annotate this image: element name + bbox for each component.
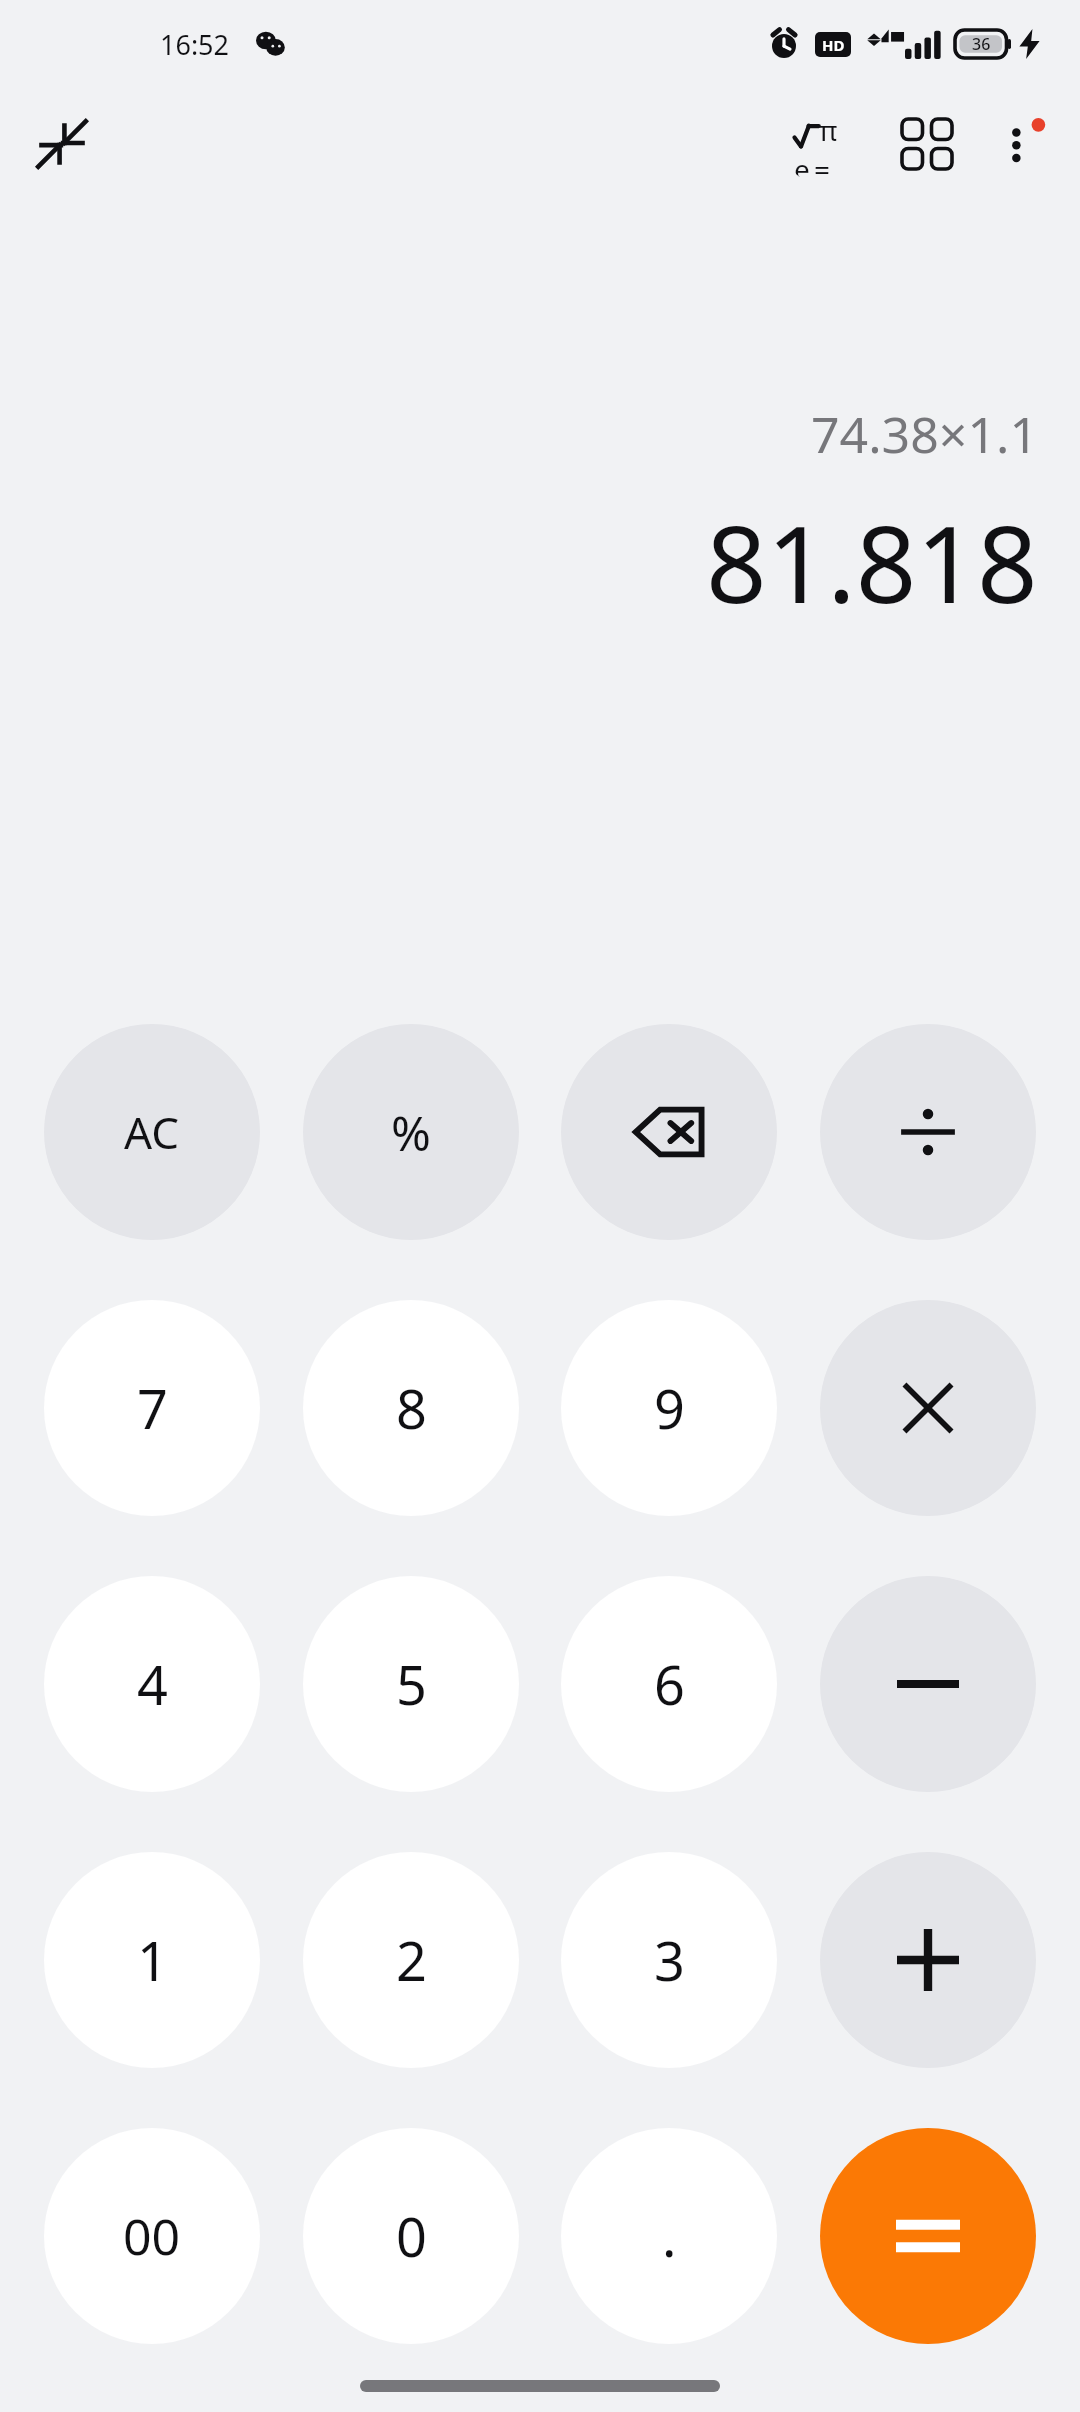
button[interactable]: 0 bbox=[303, 2128, 519, 2344]
button[interactable]: 9 bbox=[561, 1300, 777, 1516]
staticText: HD bbox=[822, 35, 845, 55]
staticText: 9 bbox=[654, 1371, 685, 1445]
staticText: % bbox=[391, 1100, 431, 1165]
staticText: = bbox=[814, 150, 831, 177]
staticText: 4 bbox=[137, 1647, 168, 1721]
button[interactable]: Scientific mode bbox=[784, 101, 870, 187]
staticText: 5 bbox=[396, 1647, 427, 1721]
button[interactable]: 7 bbox=[44, 1300, 260, 1516]
button[interactable]: Divide bbox=[820, 1024, 1036, 1240]
staticText: 7 bbox=[137, 1371, 168, 1445]
button[interactable]: Percent bbox=[303, 1024, 519, 1240]
button[interactable]: 2 bbox=[303, 1852, 519, 2068]
staticText: 16:52 bbox=[160, 26, 230, 63]
staticText: 3 bbox=[654, 1923, 685, 1997]
button[interactable]: 8 bbox=[303, 1300, 519, 1516]
staticText: 0 bbox=[396, 2199, 427, 2273]
button[interactable]: 5 bbox=[303, 1576, 519, 1792]
staticText: 36 bbox=[972, 33, 991, 55]
staticText: e bbox=[794, 150, 810, 177]
button[interactable]: Equals bbox=[820, 2128, 1036, 2344]
staticText: AC bbox=[124, 1102, 180, 1162]
button[interactable]: Multiply bbox=[820, 1300, 1036, 1516]
button[interactable]: Converters bbox=[884, 101, 970, 187]
button[interactable]: 6 bbox=[561, 1576, 777, 1792]
button[interactable]: Backspace bbox=[561, 1024, 777, 1240]
staticText: 81.818 bbox=[706, 490, 1038, 634]
staticText: 00 bbox=[123, 2202, 181, 2270]
staticText: 74.38×1.1 bbox=[811, 400, 1038, 468]
staticText: 8 bbox=[396, 1371, 427, 1445]
staticText: . bbox=[662, 2199, 677, 2273]
button[interactable]: Collapse bbox=[20, 102, 104, 186]
button[interactable]: Minus bbox=[820, 1576, 1036, 1792]
button[interactable]: Plus bbox=[820, 1852, 1036, 2068]
staticText: 2 bbox=[396, 1923, 427, 1997]
button[interactable]: 1 bbox=[44, 1852, 260, 2068]
staticText: π bbox=[819, 111, 838, 149]
button[interactable]: 00 bbox=[44, 2128, 260, 2344]
button[interactable]: More options bbox=[978, 101, 1064, 187]
staticText: 1 bbox=[137, 1923, 168, 1997]
button[interactable]: AC bbox=[44, 1024, 260, 1240]
staticText: 6 bbox=[654, 1647, 685, 1721]
button[interactable]: 3 bbox=[561, 1852, 777, 2068]
button[interactable]: Decimal point bbox=[561, 2128, 777, 2344]
button[interactable]: 4 bbox=[44, 1576, 260, 1792]
